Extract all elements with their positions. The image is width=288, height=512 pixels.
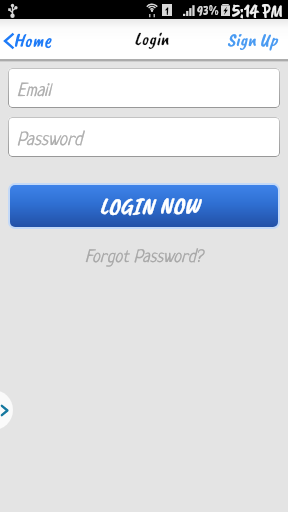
staticText: Email	[17, 81, 51, 101]
staticText: LOGIN NOW	[99, 191, 200, 221]
button[interactable]: LOGIN NOW	[10, 185, 278, 227]
button[interactable]: Home	[0, 22, 60, 57]
button[interactable]: Sign Up	[217, 22, 288, 56]
staticText: Forgot Password?	[85, 248, 203, 267]
staticText: Login	[134, 27, 169, 51]
staticText: Password	[17, 130, 83, 150]
button[interactable]: Open side menu	[0, 390, 13, 430]
staticText: Sign Up	[227, 28, 278, 52]
staticText: 5:14 PM	[232, 0, 283, 19]
staticText: 93%	[197, 3, 219, 19]
button[interactable]: Password	[8, 117, 280, 157]
button[interactable]: Email	[8, 68, 280, 108]
staticText: 1	[165, 4, 169, 16]
button[interactable]: Forgot Password?	[79, 243, 209, 266]
staticText: Home	[13, 28, 51, 53]
